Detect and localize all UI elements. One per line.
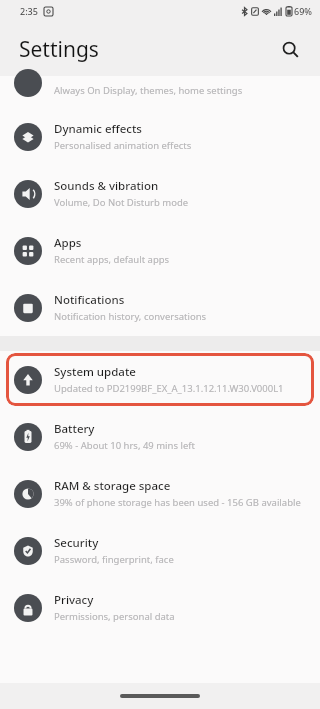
button[interactable]: Notifications (0, 279, 320, 336)
staticText: Privacy (54, 592, 94, 608)
staticText: RAM & storage space (54, 478, 171, 494)
staticText: Sounds & vibration (54, 178, 159, 194)
staticText: Volume, Do Not Disturb mode (54, 196, 189, 209)
staticText: Recent apps, default apps (54, 253, 170, 266)
staticText: Password, fingerprint, face (54, 553, 174, 566)
staticText: Notifications (54, 292, 125, 308)
staticText: Settings (19, 35, 99, 64)
button[interactable]: Apps (0, 222, 320, 279)
staticText: Updated to PD2199BF_EX_A_13.1.12.11.W30.… (54, 382, 284, 395)
staticText: Permissions, personal data (54, 610, 175, 623)
staticText: Personalised animation effects (54, 139, 192, 152)
staticText: Notification history, conversations (54, 310, 207, 323)
staticText: 69% - About 10 hrs, 49 mins left (54, 439, 195, 452)
staticText: Battery (54, 421, 95, 437)
button[interactable]: Search (272, 31, 308, 67)
staticText: 69% (294, 5, 312, 17)
staticText: System update (54, 364, 136, 380)
button[interactable]: Sounds & vibration (0, 165, 320, 222)
staticText: 2:35 (20, 5, 38, 17)
button[interactable]: Battery (0, 408, 320, 465)
staticText: Dynamic effects (54, 121, 142, 137)
button[interactable]: Dynamic effects (0, 108, 320, 165)
button[interactable]: Security (0, 522, 320, 579)
button[interactable]: System update (6, 353, 314, 406)
button[interactable]: Privacy (0, 579, 320, 636)
staticText: 39% of phone storage has been used - 156… (54, 496, 301, 509)
button[interactable]: Always On Display, themes, home settings (0, 76, 320, 108)
button[interactable]: RAM & storage space (0, 465, 320, 522)
staticText: Always On Display, themes, home settings (54, 84, 243, 97)
staticText: Security (54, 535, 99, 551)
staticText: Apps (54, 235, 82, 251)
